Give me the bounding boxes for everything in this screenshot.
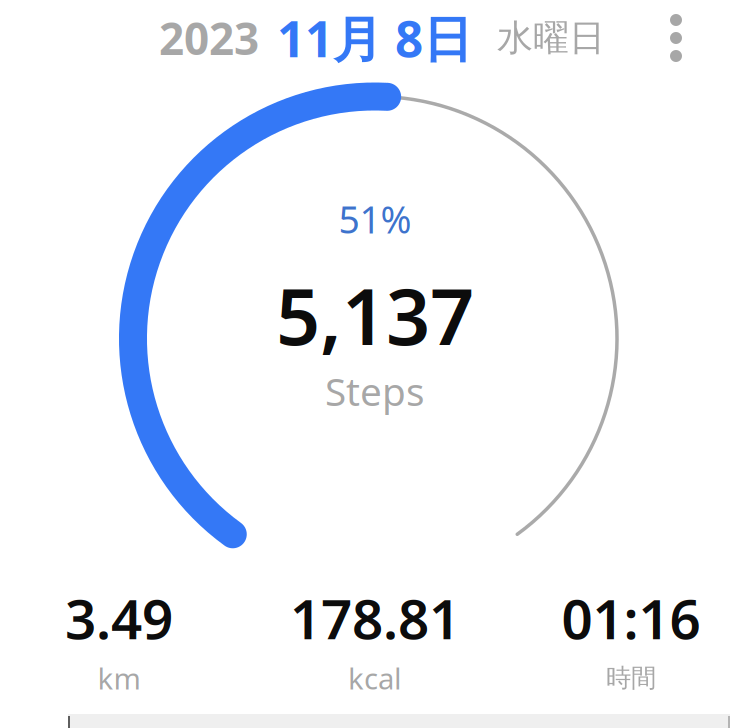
button[interactable]: 2023 bbox=[159, 0, 605, 79]
staticText: 51% bbox=[338, 194, 411, 244]
button[interactable]: More options bbox=[647, 4, 705, 72]
staticText: 3.49 bbox=[65, 582, 173, 654]
staticText: kcal bbox=[348, 658, 402, 697]
staticText: 5,137 bbox=[276, 264, 474, 366]
staticText: 11月 8日 bbox=[277, 5, 472, 71]
staticText: 01:16 bbox=[561, 582, 700, 654]
staticText: 水曜日 bbox=[497, 16, 605, 60]
staticText: Steps bbox=[325, 365, 425, 417]
staticText: 178.81 bbox=[290, 582, 460, 654]
staticText: 時間 bbox=[606, 662, 656, 693]
staticText: 2023 bbox=[159, 9, 259, 67]
staticText: km bbox=[97, 658, 140, 697]
